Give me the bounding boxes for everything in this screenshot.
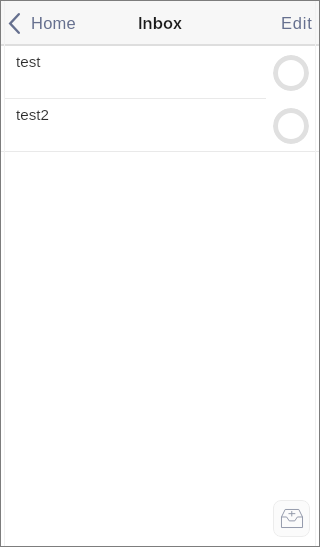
- staticText: Home: [31, 14, 77, 32]
- button[interactable]: test2: [0, 99, 320, 152]
- staticText: Inbox: [138, 13, 183, 33]
- button[interactable]: Select test: [273, 55, 309, 91]
- button[interactable]: Select test2: [273, 108, 309, 144]
- staticText: test: [16, 53, 41, 70]
- button[interactable]: Compose new message: [273, 500, 310, 537]
- button[interactable]: Edit: [271, 0, 320, 44]
- staticText: test2: [16, 106, 49, 123]
- button[interactable]: Home: [0, 0, 85, 44]
- button[interactable]: test: [0, 46, 320, 99]
- staticText: Edit: [281, 14, 313, 32]
